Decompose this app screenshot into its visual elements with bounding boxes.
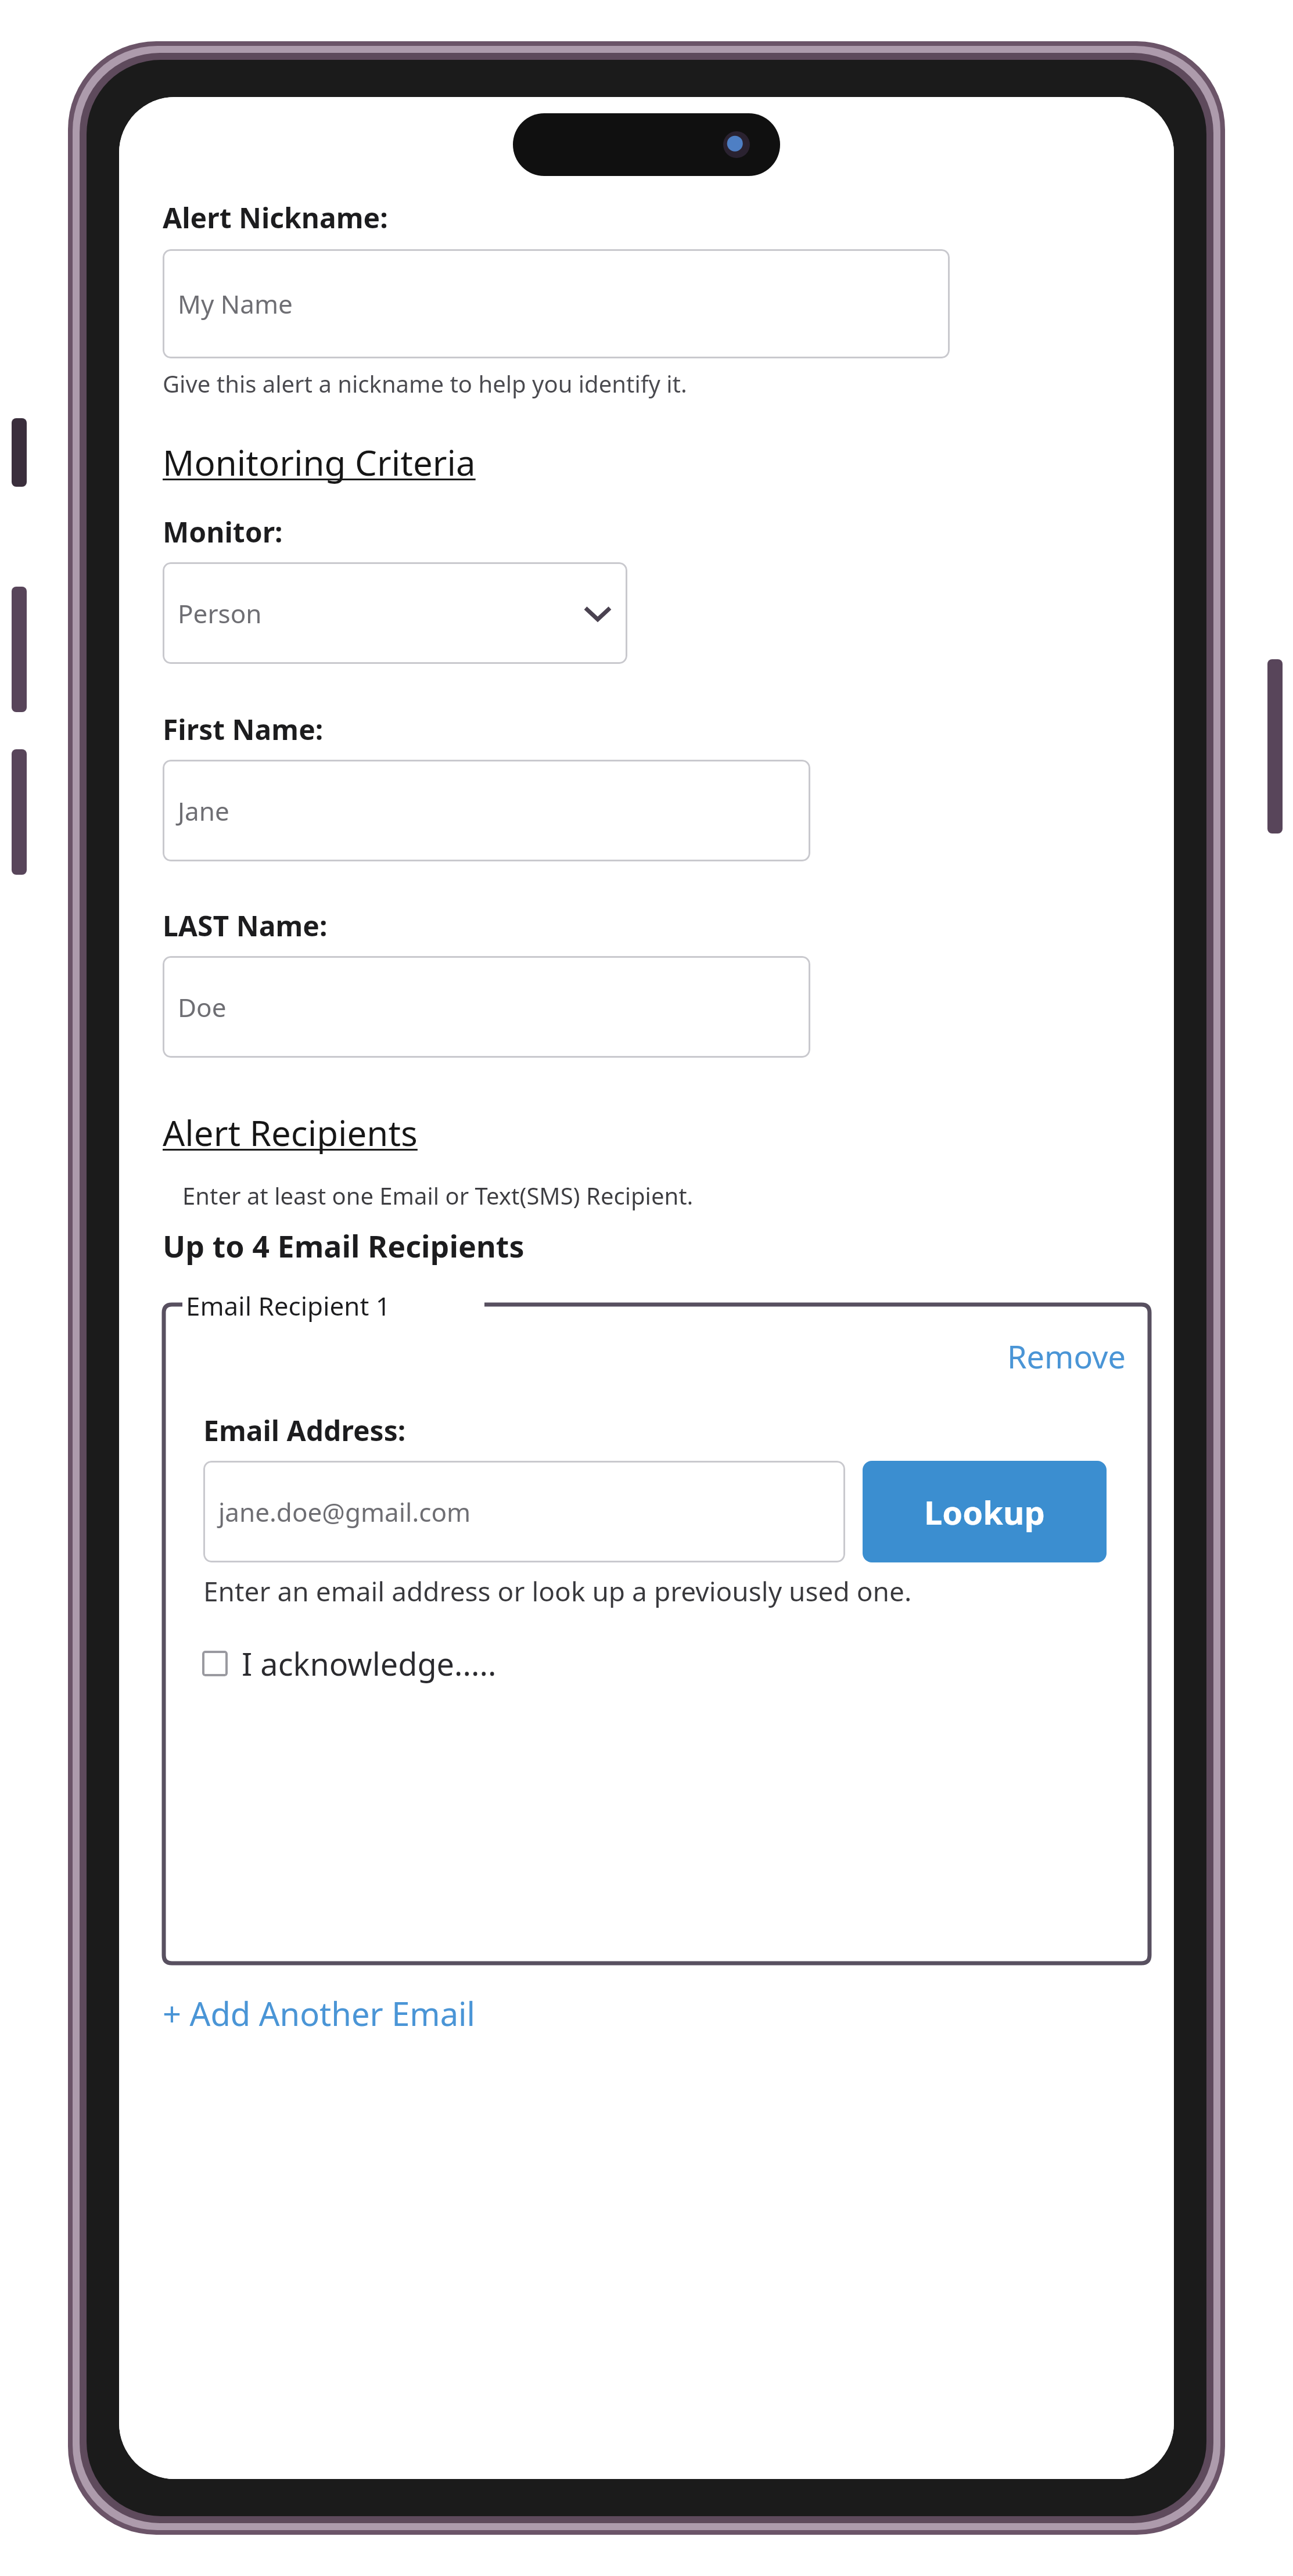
staticText: Doe bbox=[178, 990, 227, 1025]
staticText: Enter an email address or look up a prev… bbox=[203, 1573, 912, 1609]
other: Mute switch bbox=[12, 418, 27, 487]
staticText: Jane bbox=[178, 793, 229, 828]
staticText: Person bbox=[178, 596, 262, 631]
staticText: Lookup bbox=[924, 1490, 1045, 1534]
button[interactable]: Person bbox=[163, 562, 627, 664]
button[interactable]: Remove bbox=[1004, 1331, 1130, 1381]
button[interactable]: + Add Another Email bbox=[163, 1991, 475, 2035]
staticText: Monitoring Criteria bbox=[163, 439, 476, 486]
staticText: Monitor: bbox=[163, 513, 283, 551]
staticText: jane.doe@gmail.com bbox=[218, 1494, 471, 1529]
staticText: Email Address: bbox=[203, 1411, 406, 1449]
button[interactable]: I acknowledge..... bbox=[202, 1642, 497, 1685]
other: Power bbox=[1267, 659, 1283, 833]
staticText: Alert Recipients bbox=[163, 1109, 418, 1156]
staticText: LAST Name: bbox=[163, 907, 328, 944]
staticText: I acknowledge..... bbox=[242, 1642, 497, 1685]
button[interactable]: My Name bbox=[163, 249, 950, 358]
staticText: Enter at least one Email or Text(SMS) Re… bbox=[182, 1180, 694, 1211]
button[interactable]: Jane bbox=[163, 760, 810, 861]
staticText: + Add Another Email bbox=[163, 1991, 475, 2035]
button[interactable]: Lookup bbox=[863, 1461, 1107, 1562]
other: Volume up bbox=[12, 587, 27, 712]
button[interactable]: Doe bbox=[163, 956, 810, 1058]
staticText: Alert Nickname: bbox=[163, 199, 388, 236]
button[interactable]: jane.doe@gmail.com bbox=[203, 1461, 845, 1562]
staticText: First Name: bbox=[163, 710, 324, 748]
staticText: Give this alert a nickname to help you i… bbox=[163, 368, 687, 399]
staticText: Remove bbox=[1007, 1335, 1126, 1378]
staticText: Email Recipient 1 bbox=[186, 1288, 390, 1323]
other: Volume down bbox=[12, 749, 27, 875]
staticText: Up to 4 Email Recipients bbox=[163, 1225, 525, 1266]
staticText: My Name bbox=[178, 286, 293, 321]
